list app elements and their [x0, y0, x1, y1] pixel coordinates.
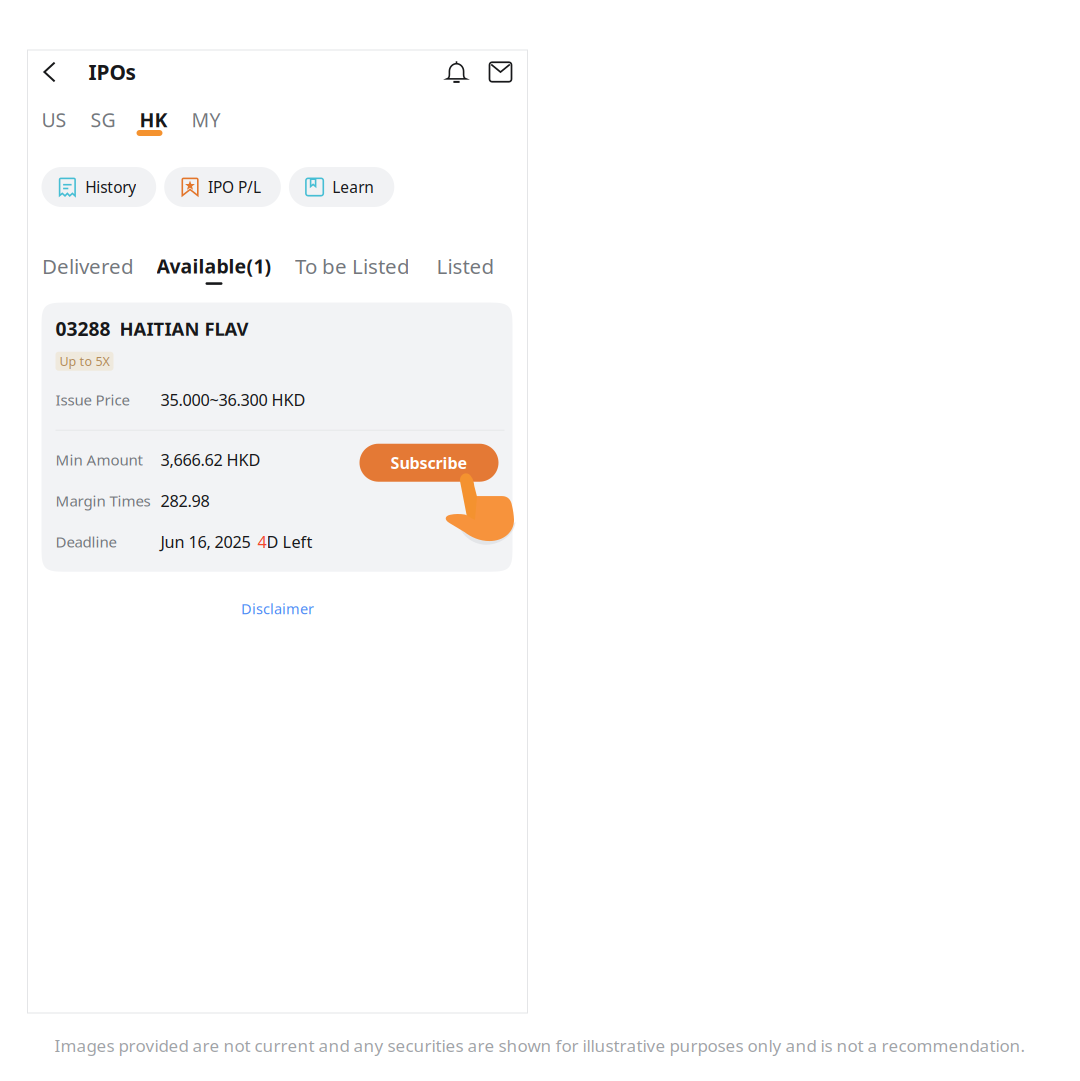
staticText: 35.000~36.300 HKD [160, 389, 305, 411]
staticText: Min Amount [55, 449, 142, 470]
staticText: IPOs [88, 58, 135, 86]
button[interactable]: To be Listed [293, 252, 411, 286]
staticText: HAITIAN FLAV [119, 316, 248, 341]
button[interactable]: HK [139, 110, 166, 136]
staticText: Learn [332, 176, 374, 198]
staticText: 4 [257, 531, 266, 553]
staticText: To be Listed [295, 252, 410, 280]
staticText: 3,666.62 HKD [160, 449, 260, 471]
button[interactable]: History [41, 167, 156, 207]
button[interactable]: Back [35, 52, 63, 92]
staticText: Subscribe [390, 452, 467, 474]
staticText: SG [90, 106, 115, 133]
staticText: D Left [266, 531, 312, 553]
button[interactable]: Disclaimer [27, 596, 527, 622]
staticText: Margin Times [55, 490, 150, 511]
staticText: Listed [436, 252, 494, 280]
staticText: MY [191, 106, 220, 133]
staticText: Available(1) [156, 253, 271, 279]
staticText: Jun 16, 2025 [160, 531, 250, 553]
staticText: IPO P/L [208, 176, 261, 198]
button[interactable]: Learn [289, 167, 394, 207]
staticText: 03288 [55, 316, 110, 342]
staticText: Issue Price [55, 389, 129, 410]
staticText: Deadline [55, 531, 116, 552]
staticText: History [85, 176, 136, 198]
button[interactable]: US [41, 110, 66, 136]
button[interactable]: Available(1) [158, 253, 269, 285]
staticText: Delivered [42, 252, 134, 280]
button[interactable]: Notifications [439, 52, 473, 92]
button[interactable]: IPOs [88, 52, 135, 92]
button[interactable]: Messages [485, 52, 515, 92]
staticText: 282.98 [160, 490, 209, 512]
button[interactable]: MY [191, 110, 219, 136]
staticText: HK [139, 106, 167, 133]
staticText: Images provided are not current and any … [54, 1034, 1025, 1057]
staticText: Disclaimer [241, 599, 314, 619]
staticText: US [41, 106, 66, 133]
staticText: Up to 5X [59, 353, 109, 370]
button[interactable]: IPO P/L [164, 167, 281, 207]
button[interactable]: Listed [436, 252, 494, 286]
button[interactable]: Subscribe [359, 444, 498, 482]
button[interactable]: Delivered [42, 252, 133, 286]
button[interactable]: SG [90, 110, 114, 136]
